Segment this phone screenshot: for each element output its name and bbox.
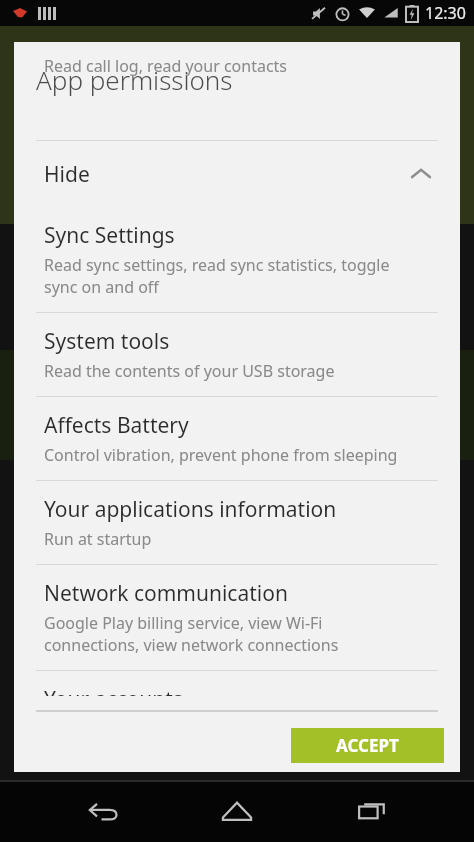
button[interactable]: Hide	[14, 141, 460, 207]
button[interactable]: System tools	[14, 313, 460, 396]
button[interactable]: Network communication	[14, 565, 460, 670]
staticText: 12:30	[425, 2, 466, 24]
staticText: Google Play billing service, view Wi-Fi …	[44, 612, 339, 656]
staticText: Control vibration, prevent phone from sl…	[44, 444, 398, 466]
staticText: Read call log, read your contacts	[44, 55, 288, 77]
staticText: Run at startup	[44, 528, 152, 550]
staticText: App permissions	[36, 62, 233, 97]
button[interactable]: Affects Battery	[14, 397, 460, 480]
staticText: Network communication	[44, 579, 288, 608]
staticText: Affects Battery	[44, 411, 189, 440]
button[interactable]: Back	[71, 780, 135, 842]
staticText: Read sync settings, read sync statistics…	[44, 254, 390, 298]
button[interactable]: Home	[205, 780, 269, 842]
staticText: Hide	[44, 160, 90, 189]
button[interactable]: ACCEPT	[291, 728, 444, 763]
staticText: System tools	[44, 327, 170, 356]
button[interactable]: Recent apps	[340, 780, 404, 842]
staticText: Sync Settings	[44, 221, 175, 250]
staticText: Read the contents of your USB storage	[44, 360, 335, 382]
button[interactable]: Your accounts	[14, 671, 460, 710]
staticText: ACCEPT	[336, 734, 399, 757]
button[interactable]: Sync Settings	[14, 207, 460, 312]
other: Collapse	[408, 161, 434, 187]
button[interactable]: Your applications information	[14, 481, 460, 564]
staticText: Your applications information	[44, 495, 337, 524]
staticText: Your accounts	[44, 685, 183, 696]
